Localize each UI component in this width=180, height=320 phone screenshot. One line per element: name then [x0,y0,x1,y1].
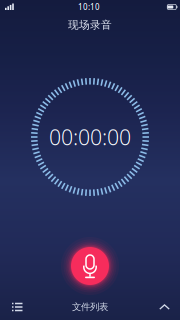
button[interactable]: Expand [151,294,176,320]
button[interactable]: File list menu [4,294,31,320]
staticText: 文件列表 [72,301,108,313]
button[interactable]: Record [59,235,121,297]
staticText: 现场录音 [68,18,112,31]
staticText: 10:10 [78,2,100,12]
button[interactable]: 文件列表 [58,295,122,319]
staticText: 00:00:00 [49,123,131,151]
